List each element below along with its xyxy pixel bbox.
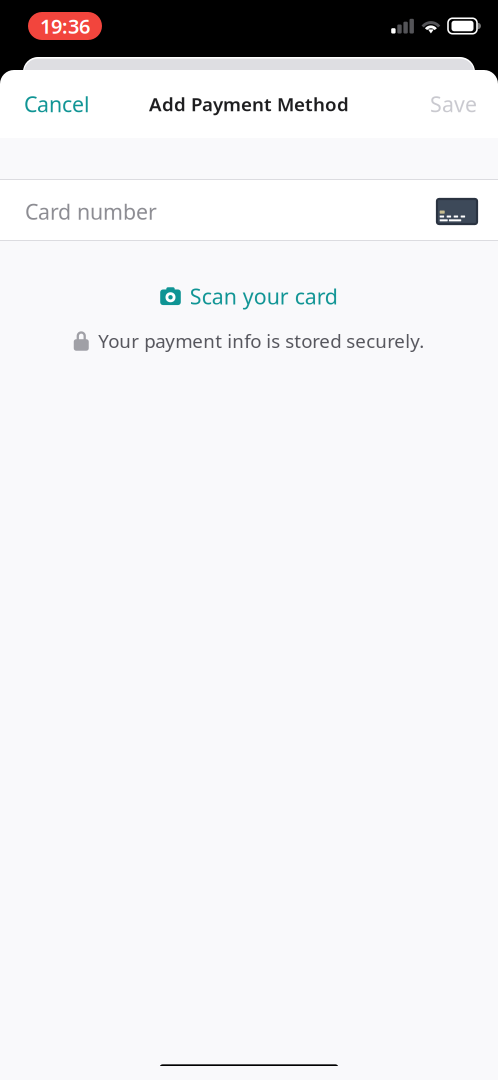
button[interactable]: Save bbox=[409, 70, 498, 138]
button[interactable]: Cancel bbox=[0, 70, 114, 138]
staticText: Add Payment Method bbox=[149, 92, 349, 116]
staticText: Cancel bbox=[24, 90, 90, 118]
staticText: Your payment info is stored securely. bbox=[98, 328, 424, 353]
staticText: Card number bbox=[25, 197, 157, 226]
staticText: Save bbox=[430, 90, 477, 118]
button[interactable]: Scan your card bbox=[160, 279, 338, 313]
staticText: Scan your card bbox=[190, 282, 338, 310]
staticText: 19:36 bbox=[40, 13, 90, 39]
